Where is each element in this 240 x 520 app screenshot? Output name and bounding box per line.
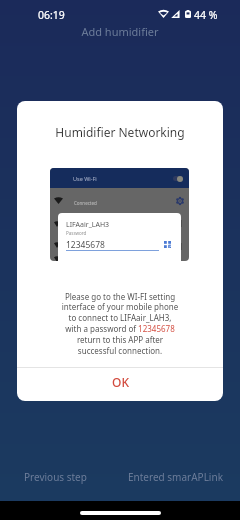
staticText: 12345678 <box>66 239 105 251</box>
staticText: Connected <box>74 200 97 206</box>
button[interactable]: Entered smarAPLink <box>118 465 233 489</box>
staticText: Entered smarAPLink <box>128 470 223 484</box>
staticText: LIFAair_LAH3 <box>66 220 110 230</box>
staticText: Please go to the WI-FI setting interface… <box>17 291 223 357</box>
staticText: Humidifier Networking <box>17 124 223 140</box>
staticText: 44 % <box>194 8 218 22</box>
staticText: Previous step <box>24 470 87 484</box>
staticText: Use Wi-Fi <box>73 175 97 182</box>
staticText: 06:19 <box>38 8 65 22</box>
staticText: OK <box>112 374 129 390</box>
staticText: Add humidifier <box>0 24 240 39</box>
staticText: Password <box>66 230 87 236</box>
button[interactable]: OK <box>17 368 223 401</box>
button[interactable]: Previous step <box>14 465 97 489</box>
